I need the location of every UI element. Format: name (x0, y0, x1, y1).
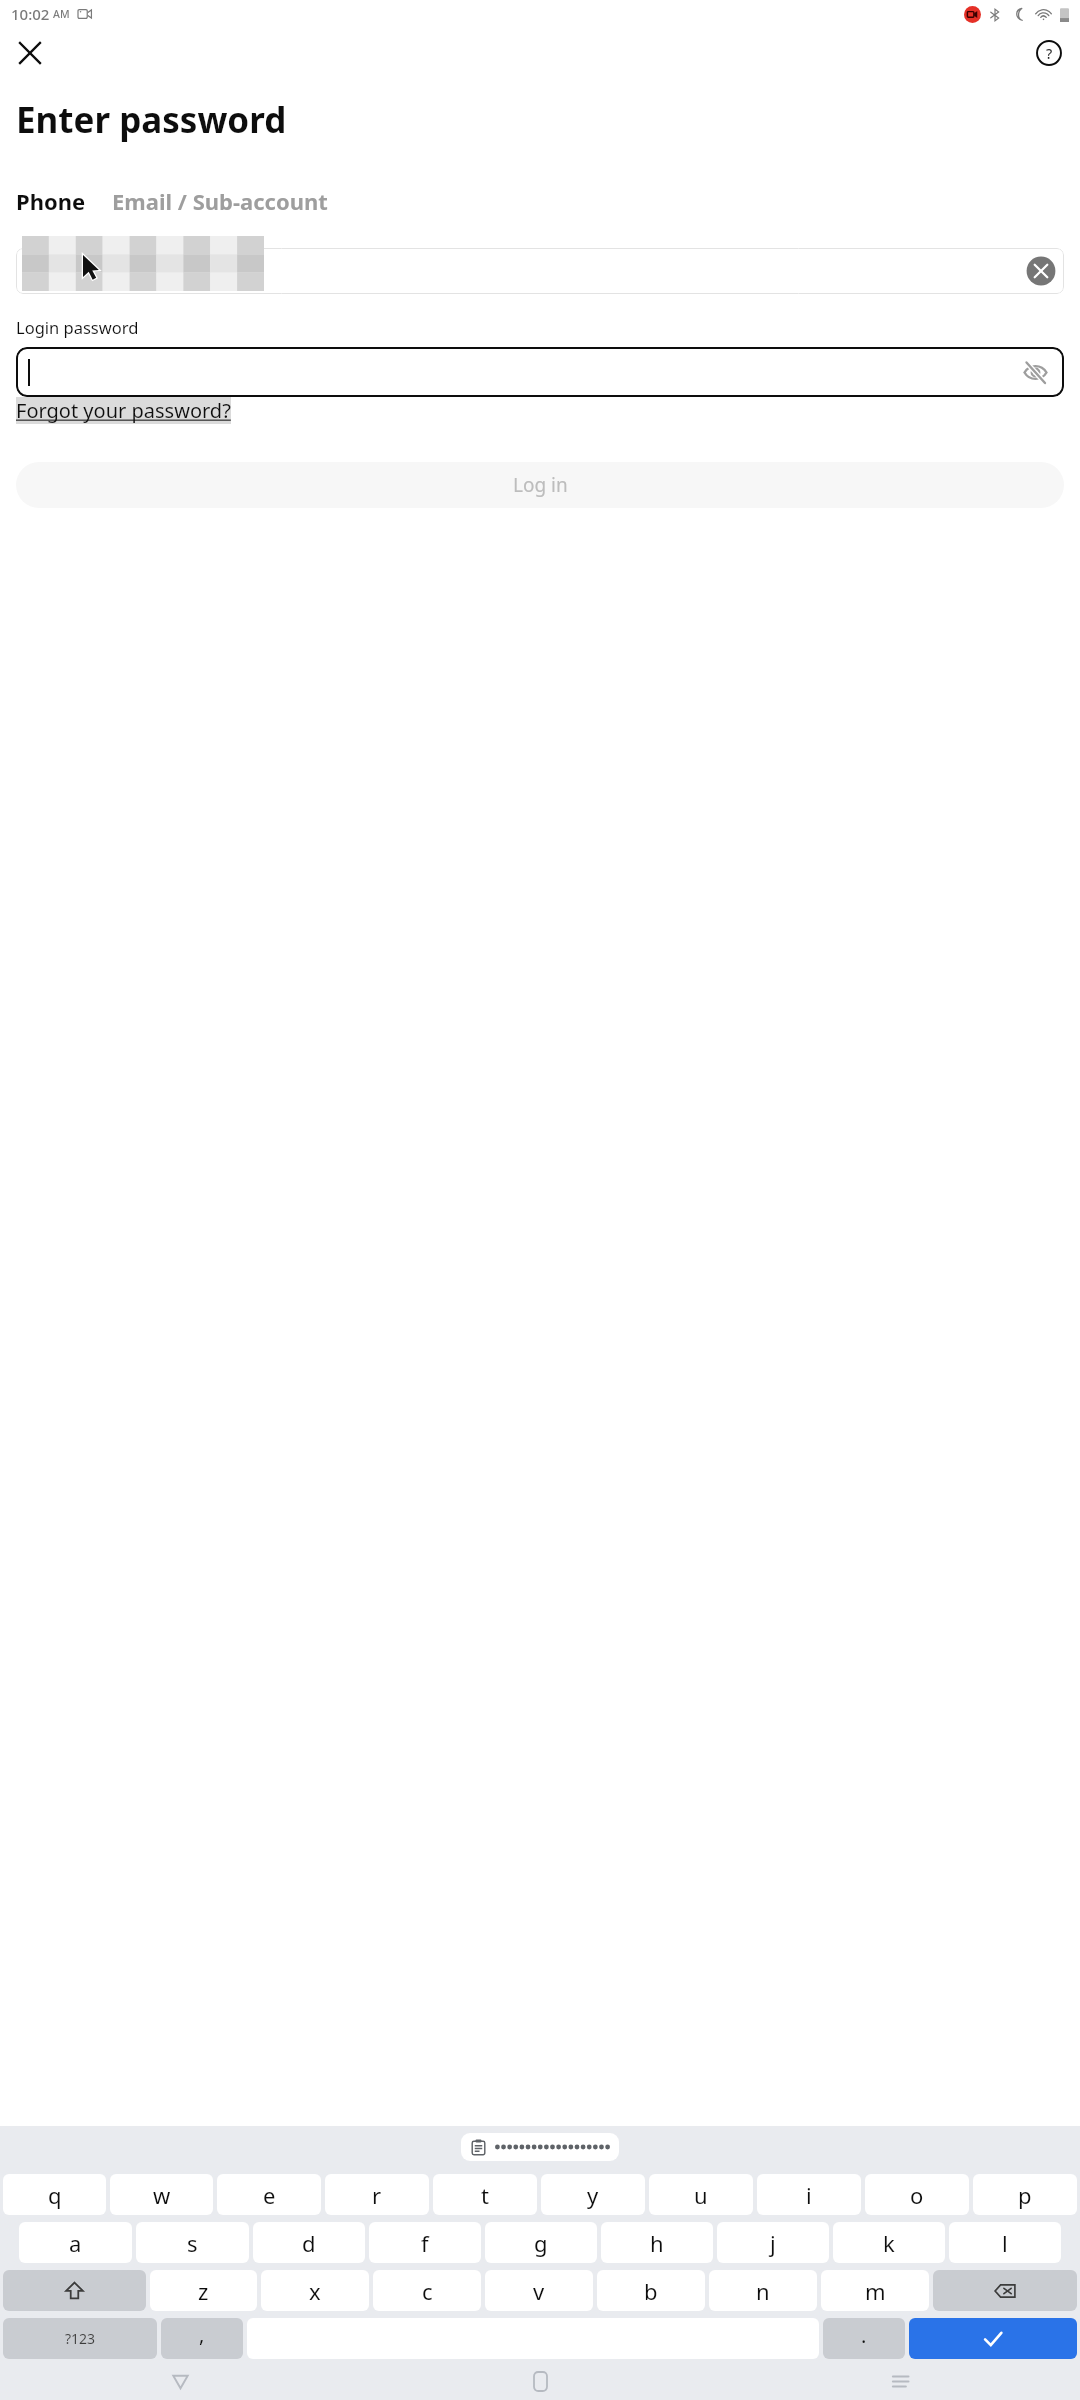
button[interactable]: n (709, 2270, 817, 2311)
button[interactable]: Recent apps (720, 2363, 1080, 2400)
staticText: u (694, 2180, 708, 2210)
button[interactable] (16, 248, 1064, 294)
button[interactable]: b (597, 2270, 705, 2311)
button[interactable]: Close (8, 31, 52, 75)
staticText: s (187, 2228, 198, 2258)
staticText: z (198, 2276, 209, 2306)
staticText: y (587, 2180, 599, 2210)
button[interactable]: Help (1027, 31, 1071, 75)
staticText: . (861, 2322, 867, 2349)
staticText: i (806, 2180, 812, 2210)
button[interactable]: z (150, 2270, 257, 2311)
staticText: v (533, 2276, 545, 2306)
button[interactable]: Back (0, 2363, 360, 2400)
staticText: d (302, 2228, 316, 2258)
staticText: Log in (513, 472, 568, 498)
button[interactable]: t (433, 2174, 537, 2215)
button[interactable]: q (3, 2174, 106, 2215)
button[interactable]: Shift (3, 2270, 146, 2311)
button[interactable]: , (161, 2318, 243, 2359)
staticText: f (421, 2228, 429, 2258)
button[interactable]: i (757, 2174, 861, 2215)
button[interactable]: h (601, 2222, 713, 2263)
button[interactable]: y (541, 2174, 645, 2215)
button[interactable]: k (833, 2222, 945, 2263)
button[interactable]: Forgot your password? (16, 397, 231, 424)
staticText: e (263, 2180, 276, 2210)
button[interactable]: f (369, 2222, 481, 2263)
staticText: n (756, 2276, 770, 2306)
staticText: x (309, 2276, 321, 2306)
staticText: Enter password (16, 96, 287, 144)
staticText: ? (1046, 44, 1053, 63)
staticText: b (644, 2276, 658, 2306)
button[interactable]: g (485, 2222, 597, 2263)
staticText: Login password (16, 316, 139, 338)
staticText: AM (53, 7, 70, 21)
button[interactable]: a (19, 2222, 132, 2263)
staticText: p (1018, 2180, 1032, 2210)
button[interactable]: r (325, 2174, 429, 2215)
staticText: k (883, 2228, 895, 2258)
button[interactable]: u (649, 2174, 753, 2215)
staticText: Forgot your password? (16, 397, 231, 424)
staticText: w (153, 2180, 171, 2210)
staticText: t (481, 2180, 489, 2210)
button[interactable]: . (823, 2318, 905, 2359)
button[interactable]: Show password (16, 347, 1064, 397)
button[interactable]: w (110, 2174, 213, 2215)
staticText: ?123 (65, 2329, 96, 2348)
button[interactable]: Home (360, 2363, 720, 2400)
button[interactable]: Log in (16, 462, 1064, 508)
button[interactable]: p (973, 2174, 1077, 2215)
button[interactable]: Show password (1018, 355, 1052, 389)
button[interactable]: l (949, 2222, 1061, 2263)
button[interactable]: d (253, 2222, 365, 2263)
staticText: r (372, 2180, 382, 2210)
button[interactable]: s (136, 2222, 249, 2263)
button[interactable]: v (485, 2270, 593, 2311)
staticText: h (650, 2228, 664, 2258)
button[interactable]: Enter (909, 2318, 1077, 2359)
staticText: Phone (16, 186, 86, 216)
button[interactable]: x (261, 2270, 369, 2311)
button[interactable]: m (821, 2270, 929, 2311)
button[interactable]: ?123 (3, 2318, 157, 2359)
button[interactable]: j (717, 2222, 829, 2263)
button[interactable]: o (865, 2174, 969, 2215)
staticText: l (1002, 2228, 1008, 2258)
staticText: a (69, 2228, 82, 2258)
staticText: j (770, 2228, 776, 2258)
staticText: m (865, 2276, 886, 2306)
staticText: , (199, 2321, 205, 2348)
button[interactable]: c (373, 2270, 481, 2311)
staticText: 10:02 (11, 4, 50, 24)
button[interactable]: Clear (1026, 256, 1056, 286)
staticText: Email / Sub-account (112, 186, 328, 216)
button[interactable]: e (217, 2174, 321, 2215)
staticText: q (48, 2180, 62, 2210)
button[interactable]: Backspace (933, 2270, 1077, 2311)
button[interactable]: Email / Sub-account (112, 182, 328, 220)
staticText: c (422, 2276, 433, 2306)
staticText: o (910, 2180, 924, 2210)
staticText: g (534, 2228, 548, 2258)
button[interactable]: Phone (16, 182, 86, 220)
button[interactable]: Paste from clipboard (461, 2133, 619, 2161)
